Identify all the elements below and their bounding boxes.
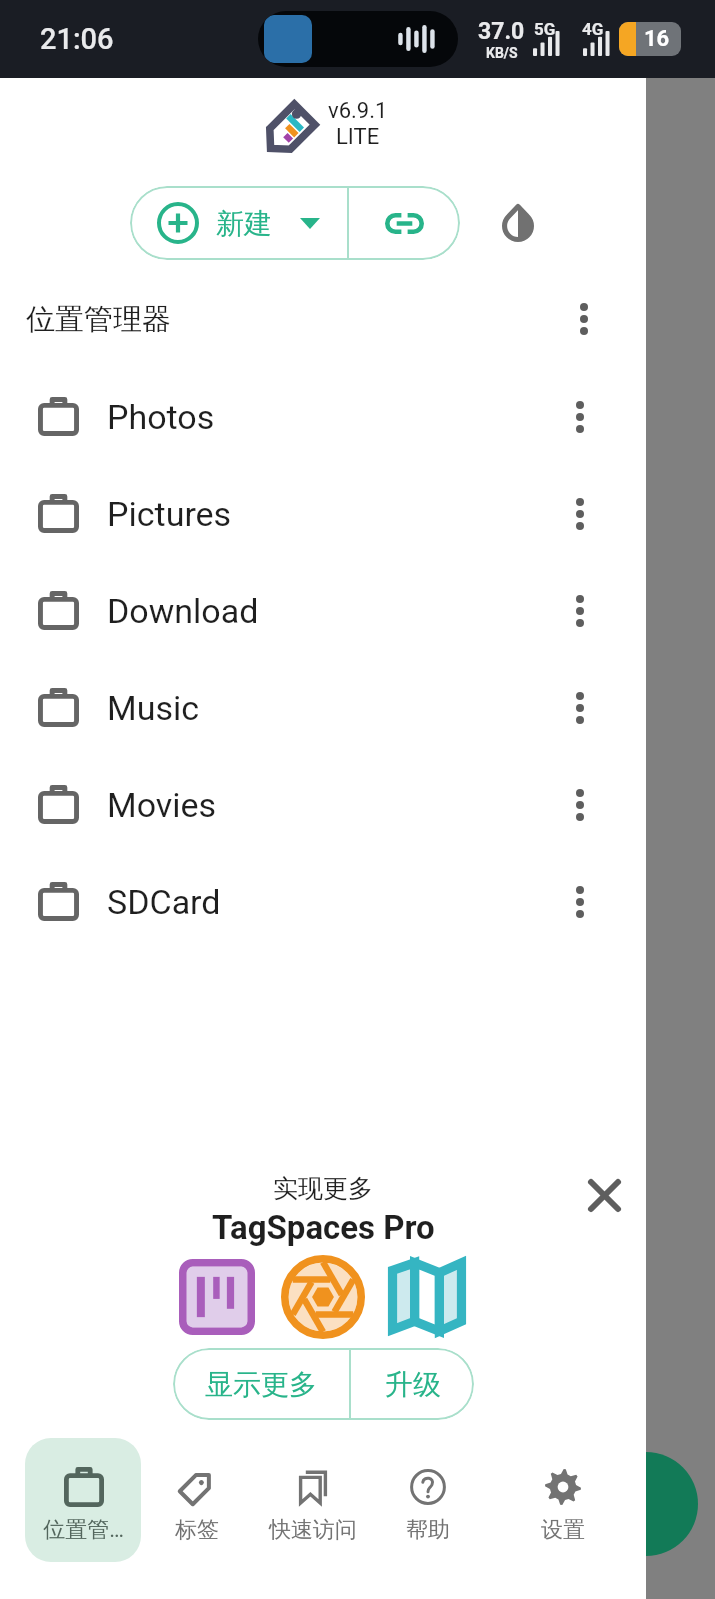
staticText: Download [107, 591, 259, 631]
button[interactable]: Pictures [0, 465, 646, 562]
staticText: 显示更多 [205, 1367, 317, 1402]
button[interactable]: More options [554, 779, 606, 831]
staticText: 位置管… [43, 1516, 124, 1544]
button[interactable]: 快速访问 [255, 1438, 371, 1562]
button[interactable]: Close [576, 1167, 632, 1223]
staticText: 4G [582, 19, 604, 39]
staticText: 16 [644, 26, 670, 52]
button[interactable]: More options [554, 876, 606, 928]
button[interactable]: Movies [0, 756, 646, 853]
staticText: Movies [107, 785, 217, 825]
button[interactable]: Add link [349, 186, 460, 260]
button[interactable]: Create new [594, 1452, 698, 1556]
staticText: 帮助 [406, 1516, 450, 1544]
staticText: 实现更多 [273, 1173, 373, 1204]
staticText: 快速访问 [269, 1516, 357, 1544]
staticText: 标签 [175, 1516, 219, 1544]
button[interactable]: SDCard [0, 853, 646, 950]
button[interactable]: 标签 [139, 1438, 255, 1562]
button[interactable]: More options [558, 293, 610, 345]
staticText: KB/S [486, 45, 518, 61]
staticText: 37.0 [478, 18, 525, 45]
button[interactable]: 位置管… [25, 1438, 141, 1562]
staticText: Music [107, 688, 200, 728]
button[interactable]: More options [554, 391, 606, 443]
staticText: 位置管理器 [26, 301, 171, 338]
staticText: 升级 [385, 1367, 441, 1402]
button[interactable]: 新建 [130, 186, 347, 260]
staticText: SDCard [107, 882, 221, 922]
button[interactable]: More options [554, 585, 606, 637]
staticText: 设置 [541, 1516, 585, 1544]
staticText: v6.9.1 [328, 98, 388, 124]
button[interactable]: 帮助 [370, 1438, 486, 1562]
button[interactable]: 升级 [351, 1348, 474, 1420]
button[interactable]: More options [554, 682, 606, 734]
button[interactable]: Music [0, 659, 646, 756]
button[interactable]: 设置 [505, 1438, 621, 1562]
button[interactable]: 显示更多 [173, 1348, 349, 1420]
staticText: 5G [534, 19, 556, 39]
staticText: Photos [107, 397, 215, 437]
staticText: 21:06 [40, 22, 114, 56]
button[interactable]: Toggle theme [488, 193, 548, 253]
staticText: 新建 [216, 206, 272, 241]
staticText: LITE [336, 124, 380, 150]
staticText: Pictures [107, 494, 232, 534]
button[interactable]: More options [554, 488, 606, 540]
button[interactable]: Photos [0, 368, 646, 465]
staticText: TagSpaces Pro [212, 1208, 435, 1247]
button[interactable]: Download [0, 562, 646, 659]
